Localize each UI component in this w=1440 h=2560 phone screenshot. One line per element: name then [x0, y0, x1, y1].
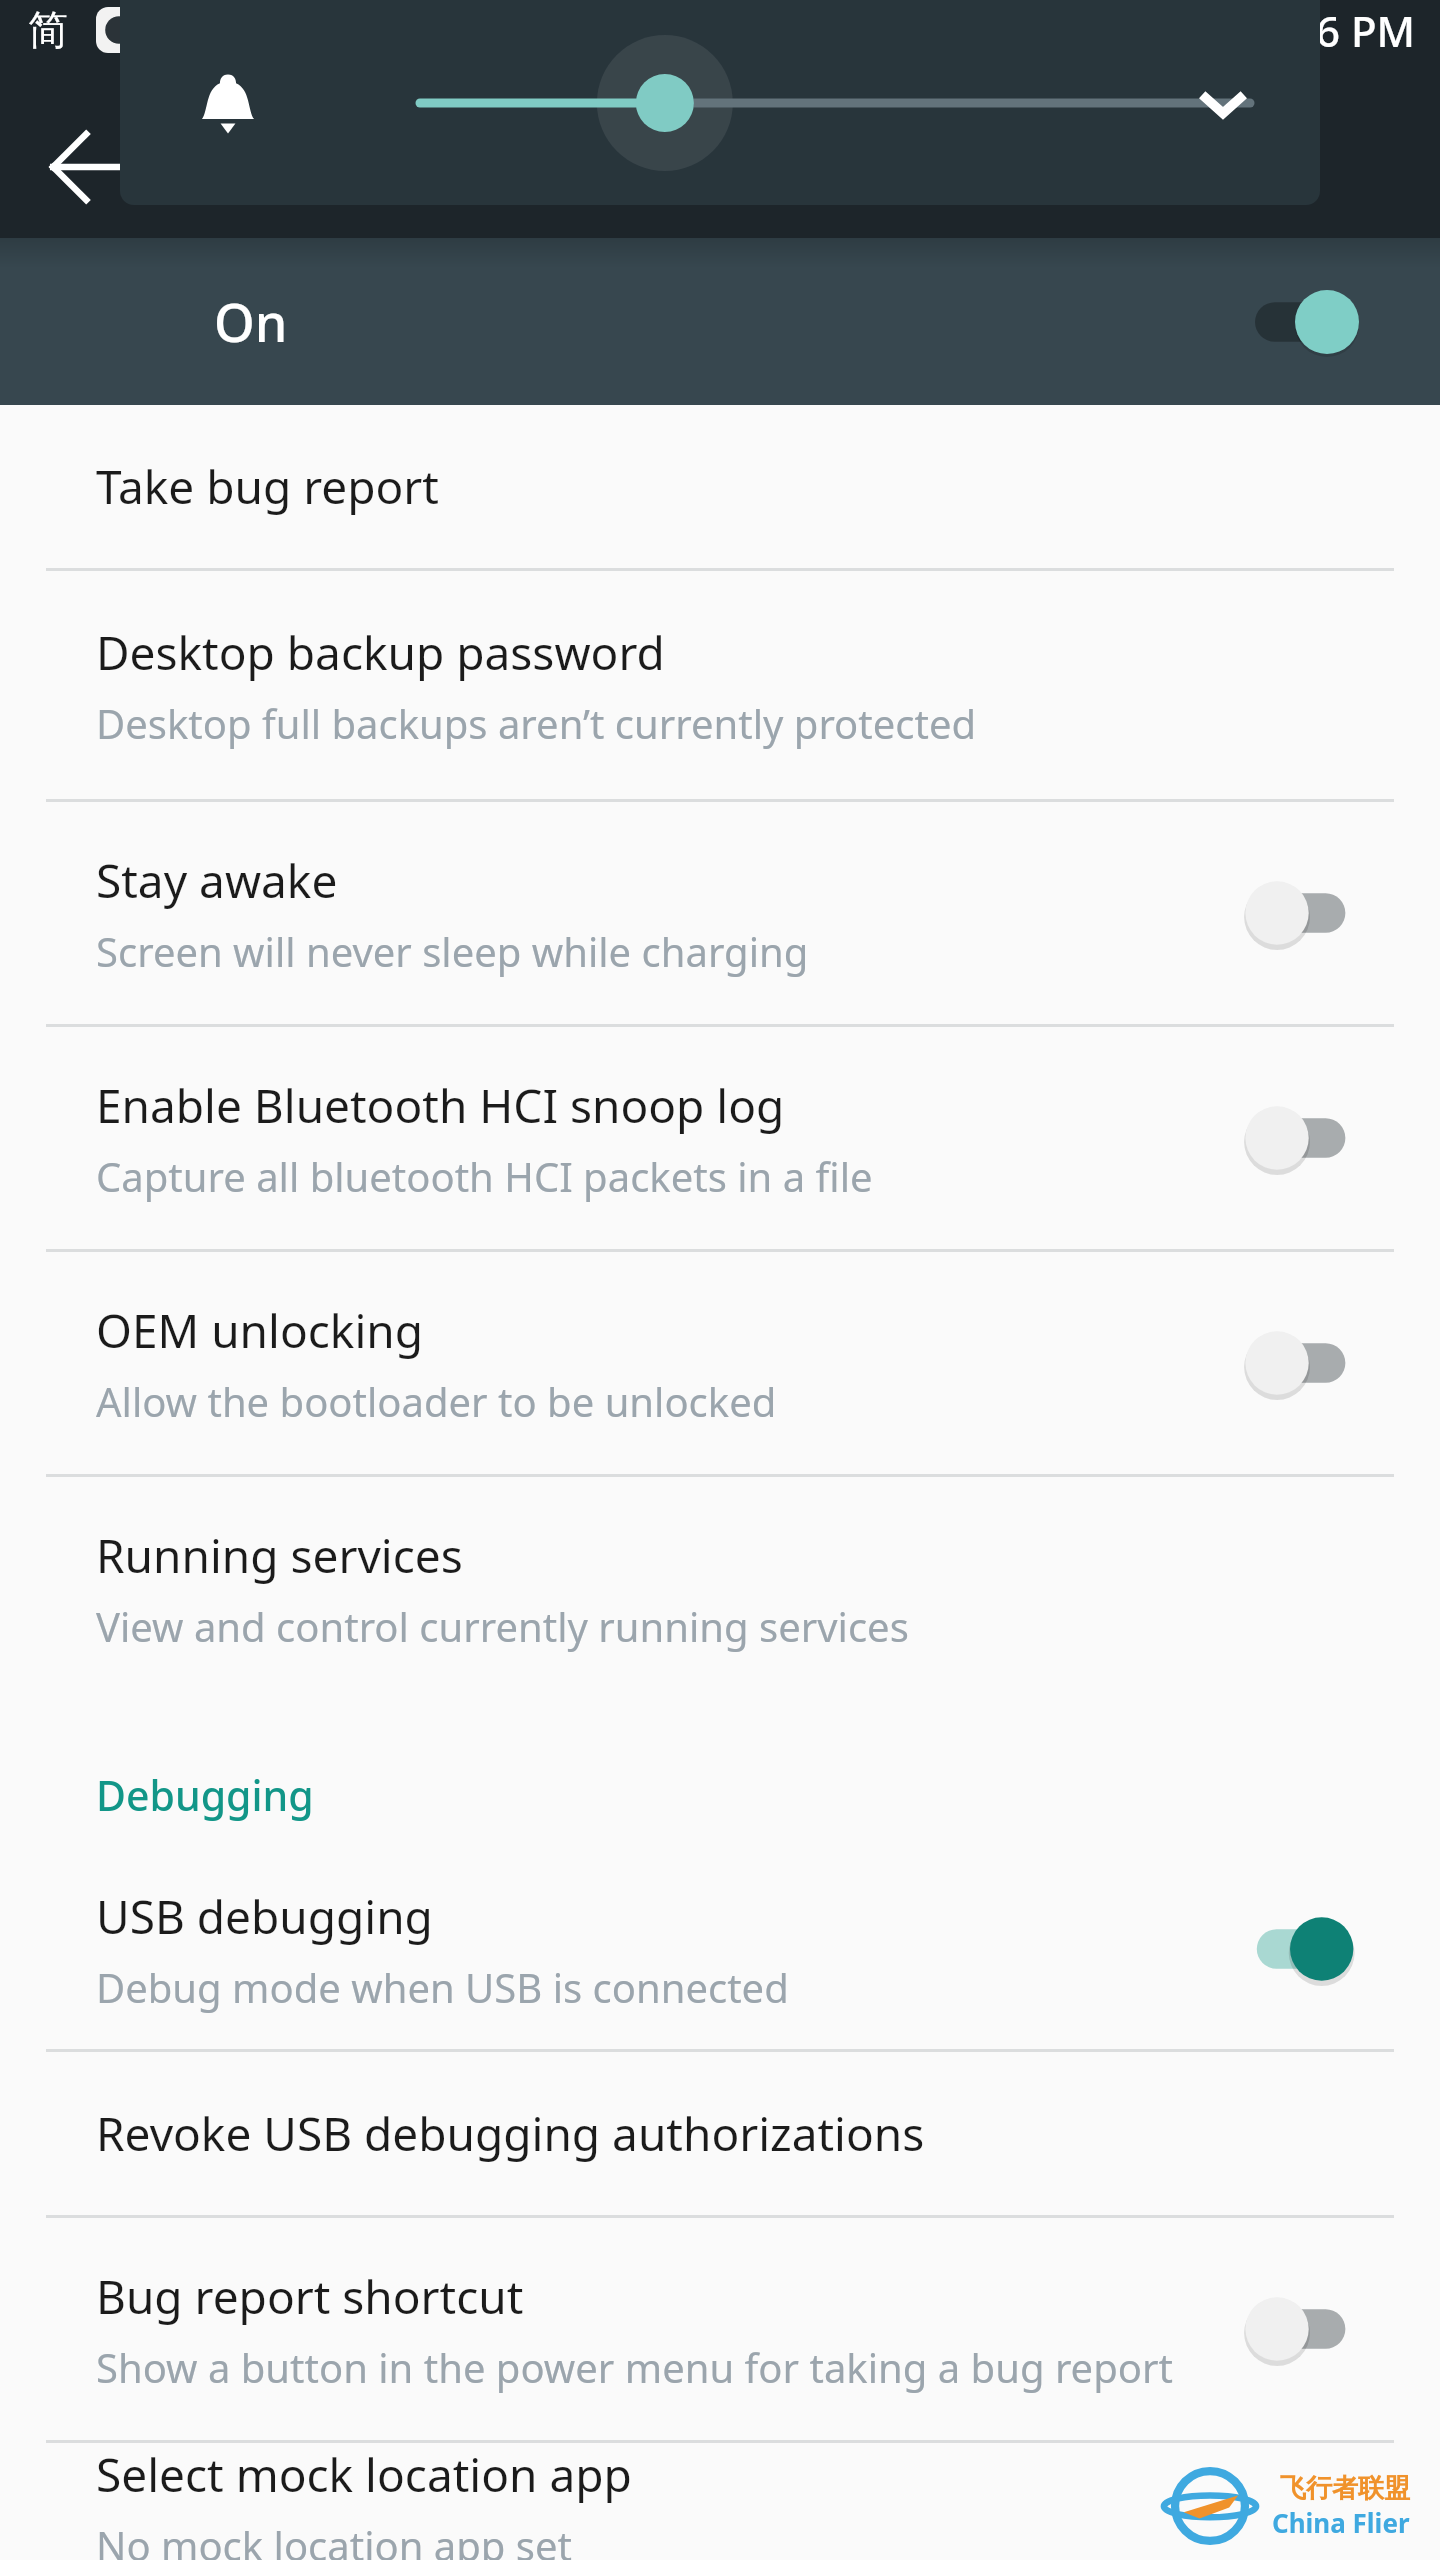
button[interactable]: Expand volume controls [1168, 48, 1278, 158]
button[interactable]: Revoke USB debugging authorizations [0, 2052, 1440, 2215]
button[interactable]: Ring volume [168, 43, 288, 163]
staticText: 简 [28, 5, 68, 55]
staticText: View and control currently running servi… [96, 1599, 909, 1653]
staticText: 飞行者联盟 [1280, 2472, 1410, 2505]
button[interactable]: Enable Bluetooth HCI snoop log [0, 1027, 1440, 1249]
button[interactable]: Enable Bluetooth HCI snoop log [1200, 1027, 1400, 1249]
button[interactable]: OEM unlocking [0, 1252, 1440, 1474]
staticText: Running services [96, 1524, 463, 1587]
button[interactable]: OEM unlocking [1200, 1252, 1400, 1474]
staticText: Take bug report [96, 455, 439, 518]
staticText: No mock location app set [96, 2518, 572, 2560]
button[interactable]: Stay awake [1200, 802, 1400, 1024]
staticText: USB debugging [96, 1885, 433, 1948]
button[interactable]: Desktop backup password [0, 571, 1440, 799]
staticText: Allow the bootloader to be unlocked [96, 1374, 777, 1428]
staticText: Bug report shortcut [96, 2265, 524, 2328]
button[interactable]: USB debugging [1200, 1849, 1400, 2049]
button[interactable]: Bug report shortcut [1200, 2218, 1400, 2440]
staticText: On [214, 286, 288, 357]
staticText: Desktop full backups aren’t currently pr… [96, 696, 977, 750]
button[interactable]: Volume slider [420, 23, 1250, 183]
staticText: Show a button in the power menu for taki… [96, 2340, 1173, 2394]
staticText: Capture all bluetooth HCI packets in a f… [96, 1149, 873, 1203]
staticText: Select mock location app [96, 2443, 632, 2506]
staticText: Enable Bluetooth HCI snoop log [96, 1074, 785, 1137]
button[interactable]: Developer options on [1232, 267, 1382, 377]
staticText: Revoke USB debugging authorizations [96, 2102, 925, 2165]
button[interactable]: Running services [0, 1477, 1440, 1699]
button[interactable]: Select mock location app [0, 2443, 1440, 2560]
button[interactable]: Bug report shortcut [0, 2218, 1440, 2440]
staticText: Debug mode when USB is connected [96, 1960, 789, 2014]
staticText: OEM unlocking [96, 1299, 423, 1362]
button[interactable]: Take bug report [0, 405, 1440, 568]
button[interactable]: Stay awake [0, 802, 1440, 1024]
staticText: China Flier [1272, 2505, 1410, 2540]
staticText: Debugging [96, 1767, 314, 1823]
staticText: Desktop backup password [96, 621, 665, 684]
button[interactable]: Back [40, 112, 150, 222]
staticText: Stay awake [96, 849, 338, 912]
staticText: 6 PM [1316, 2, 1416, 59]
staticText: Screen will never sleep while charging [96, 924, 809, 978]
button[interactable]: USB debugging [0, 1849, 1440, 2049]
